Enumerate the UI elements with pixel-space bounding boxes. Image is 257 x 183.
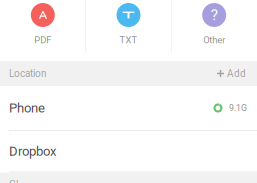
button[interactable]: Dropbox — [0, 131, 257, 172]
staticText: Add — [227, 68, 246, 79]
button[interactable]: Phone — [0, 86, 257, 131]
staticText: Phone — [9, 100, 45, 116]
button[interactable]: PDF — [0, 0, 86, 61]
button[interactable]: Add — [217, 68, 246, 79]
staticText: 9.1G — [229, 103, 247, 113]
staticText: PDF — [34, 34, 51, 45]
button[interactable]: ? — [171, 0, 257, 61]
staticText: TXT — [119, 34, 137, 45]
staticText: Location — [9, 68, 47, 79]
staticText: ? — [211, 6, 218, 24]
staticText: Cl — [9, 178, 18, 183]
staticText: Dropbox — [9, 144, 56, 159]
button[interactable]: TXT — [86, 0, 171, 61]
staticText: Other — [203, 34, 225, 45]
